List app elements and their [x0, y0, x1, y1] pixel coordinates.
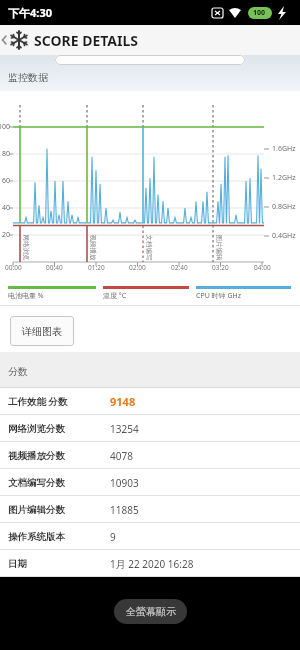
staticText: 操作系统版本	[8, 531, 65, 543]
staticText: 1.6GHz	[272, 144, 296, 154]
button[interactable]: 工作效能 分数	[0, 388, 300, 415]
button[interactable]: 文档编写分数	[0, 469, 300, 496]
staticText: 视频播放	[88, 234, 96, 260]
staticText: 文档编写	[144, 234, 152, 260]
button[interactable]: 全螢幕顯示	[114, 599, 187, 624]
staticText: 视频播放分数	[8, 450, 65, 462]
staticText: SCORE DETAILS	[34, 31, 139, 50]
staticText: 02:00	[129, 263, 146, 272]
staticText: 工作效能 分数	[8, 395, 68, 408]
staticText: 0.8GHz	[272, 202, 296, 212]
staticText: 9148	[110, 394, 136, 409]
staticText: 9	[110, 530, 116, 544]
button[interactable]: 网络浏览分数	[0, 415, 300, 442]
staticText: 文档编写分数	[8, 477, 65, 489]
staticText: 网络浏览	[21, 234, 29, 260]
staticText: 下午4:30	[8, 5, 52, 20]
button[interactable]: 日期	[0, 550, 300, 577]
staticText: 4078	[110, 449, 133, 463]
staticText: 100	[0, 122, 11, 132]
staticText: 分数	[8, 365, 28, 378]
staticText: 图片编辑	[214, 234, 222, 260]
staticText: 0.4GHz	[272, 231, 296, 241]
staticText: 01:20	[88, 263, 105, 272]
staticText: 02:40	[171, 263, 188, 272]
staticText: 10903	[110, 476, 139, 490]
staticText: 00:40	[46, 263, 63, 272]
staticText: 网络浏览分数	[8, 423, 65, 435]
staticText: 11885	[110, 503, 139, 517]
button[interactable]: 操作系统版本	[0, 523, 300, 550]
staticText: 监控数据	[8, 71, 48, 84]
staticText: 03:20	[212, 263, 229, 272]
staticText: 日期	[8, 558, 27, 570]
staticText: 电池电量 %	[8, 291, 44, 301]
button[interactable]: SCORE DETAILS	[0, 25, 300, 55]
staticText: 图片编辑分数	[8, 504, 65, 516]
staticText: 60	[2, 176, 11, 186]
button[interactable]: 视频播放分数	[0, 442, 300, 469]
staticText: 1.2GHz	[272, 173, 296, 183]
staticText: 100	[253, 8, 266, 18]
staticText: 详细图表	[22, 325, 62, 338]
staticText: 1月 22 2020 16:28	[110, 557, 194, 571]
staticText: 80	[2, 149, 11, 159]
button[interactable]: 详细图表	[10, 316, 74, 346]
staticText: CPU 时钟 GHz	[196, 291, 241, 301]
staticText: 00:00	[5, 263, 22, 272]
staticText: 全螢幕顯示	[126, 605, 176, 618]
staticText: 04:00	[254, 263, 271, 272]
staticText: 40	[2, 203, 11, 213]
staticText: 13254	[110, 422, 139, 436]
staticText: 20	[2, 230, 11, 240]
staticText: 温度 °C	[103, 291, 127, 301]
button[interactable]: 图片编辑分数	[0, 496, 300, 523]
